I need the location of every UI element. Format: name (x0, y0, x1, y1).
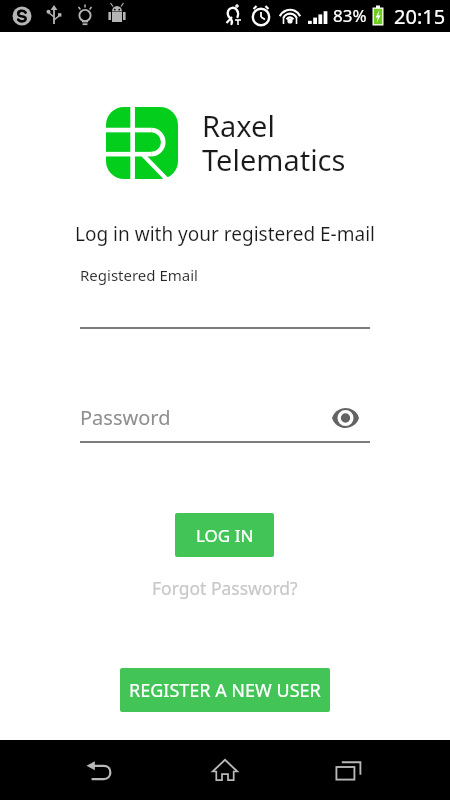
button[interactable]: Password (80, 401, 370, 444)
staticText: Raxel (202, 106, 275, 145)
button[interactable]: Back (70, 755, 130, 785)
staticText: Forgot Password? (152, 576, 298, 600)
staticText: REGISTER A NEW USER (129, 678, 321, 703)
button[interactable]: Show password (331, 404, 359, 432)
button[interactable]: Home (195, 755, 255, 785)
staticText: 20:15 (394, 3, 446, 30)
staticText: 83% (333, 4, 367, 27)
staticText: LOG IN (196, 524, 254, 547)
staticText: Password (80, 404, 171, 431)
button[interactable]: Recent apps (319, 755, 379, 785)
button[interactable]: Registered Email (80, 262, 370, 329)
staticText: Telematics (202, 140, 346, 179)
staticText: Registered Email (80, 265, 198, 285)
button[interactable]: Forgot Password? (150, 572, 300, 604)
button[interactable]: REGISTER A NEW USER (120, 668, 330, 712)
button[interactable]: LOG IN (175, 513, 274, 557)
staticText: Log in with your registered E-mail (0, 221, 450, 247)
